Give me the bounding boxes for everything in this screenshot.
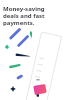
staticText: Money-saving deals and fast payments. — [3, 5, 45, 27]
